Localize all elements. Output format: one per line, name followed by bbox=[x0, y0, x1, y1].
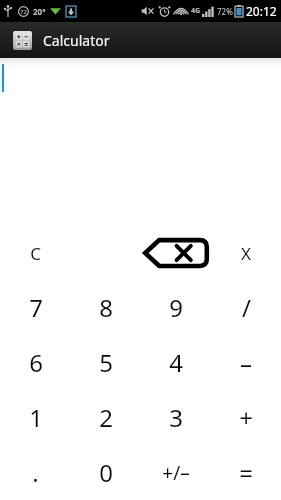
button[interactable]: 1 bbox=[0, 390, 71, 445]
staticText: . bbox=[32, 456, 39, 489]
button[interactable]: 4 bbox=[141, 335, 211, 390]
staticText: 20:12 bbox=[246, 3, 277, 19]
staticText: C bbox=[30, 242, 41, 265]
staticText: = bbox=[239, 456, 253, 489]
button[interactable] bbox=[0, 58, 281, 226]
staticText: 1 bbox=[29, 401, 43, 434]
button[interactable]: – bbox=[211, 335, 281, 390]
staticText: 0 bbox=[99, 456, 113, 489]
button[interactable]: 6 bbox=[0, 335, 71, 390]
button[interactable]: 8 bbox=[71, 280, 141, 335]
button[interactable]: +/– bbox=[141, 445, 211, 500]
staticText: +/– bbox=[162, 460, 190, 486]
staticText: 5 bbox=[99, 346, 113, 379]
staticText: 6 bbox=[29, 346, 43, 379]
staticText: 4 bbox=[169, 346, 183, 379]
button[interactable]: + bbox=[211, 390, 281, 445]
staticText: 7 bbox=[29, 291, 43, 324]
button[interactable]: 5 bbox=[71, 335, 141, 390]
button[interactable]: 2 bbox=[71, 390, 141, 445]
button[interactable]: 7 bbox=[0, 280, 71, 335]
staticText: / bbox=[242, 291, 251, 324]
button[interactable]: 0 bbox=[71, 445, 141, 500]
staticText: 2 bbox=[99, 401, 113, 434]
staticText: 72% bbox=[217, 6, 233, 17]
staticText: Calculator bbox=[43, 31, 110, 50]
button[interactable]: 9 bbox=[141, 280, 211, 335]
button[interactable]: 3 bbox=[141, 390, 211, 445]
staticText: 4G bbox=[191, 6, 201, 16]
button[interactable]: / bbox=[211, 280, 281, 335]
button[interactable]: Backspace bbox=[141, 226, 211, 280]
staticText: 9 bbox=[169, 291, 183, 324]
staticText: 3 bbox=[169, 401, 183, 434]
staticText: 72 bbox=[20, 8, 27, 16]
staticText: X bbox=[241, 242, 251, 265]
button[interactable]: C bbox=[0, 226, 71, 280]
staticText: + bbox=[239, 401, 253, 434]
button[interactable]: = bbox=[211, 445, 281, 500]
staticText: 20° bbox=[33, 6, 46, 17]
button[interactable]: X bbox=[211, 226, 281, 280]
staticText: – bbox=[240, 346, 252, 379]
staticText: 8 bbox=[99, 291, 113, 324]
button[interactable]: . bbox=[0, 445, 71, 500]
